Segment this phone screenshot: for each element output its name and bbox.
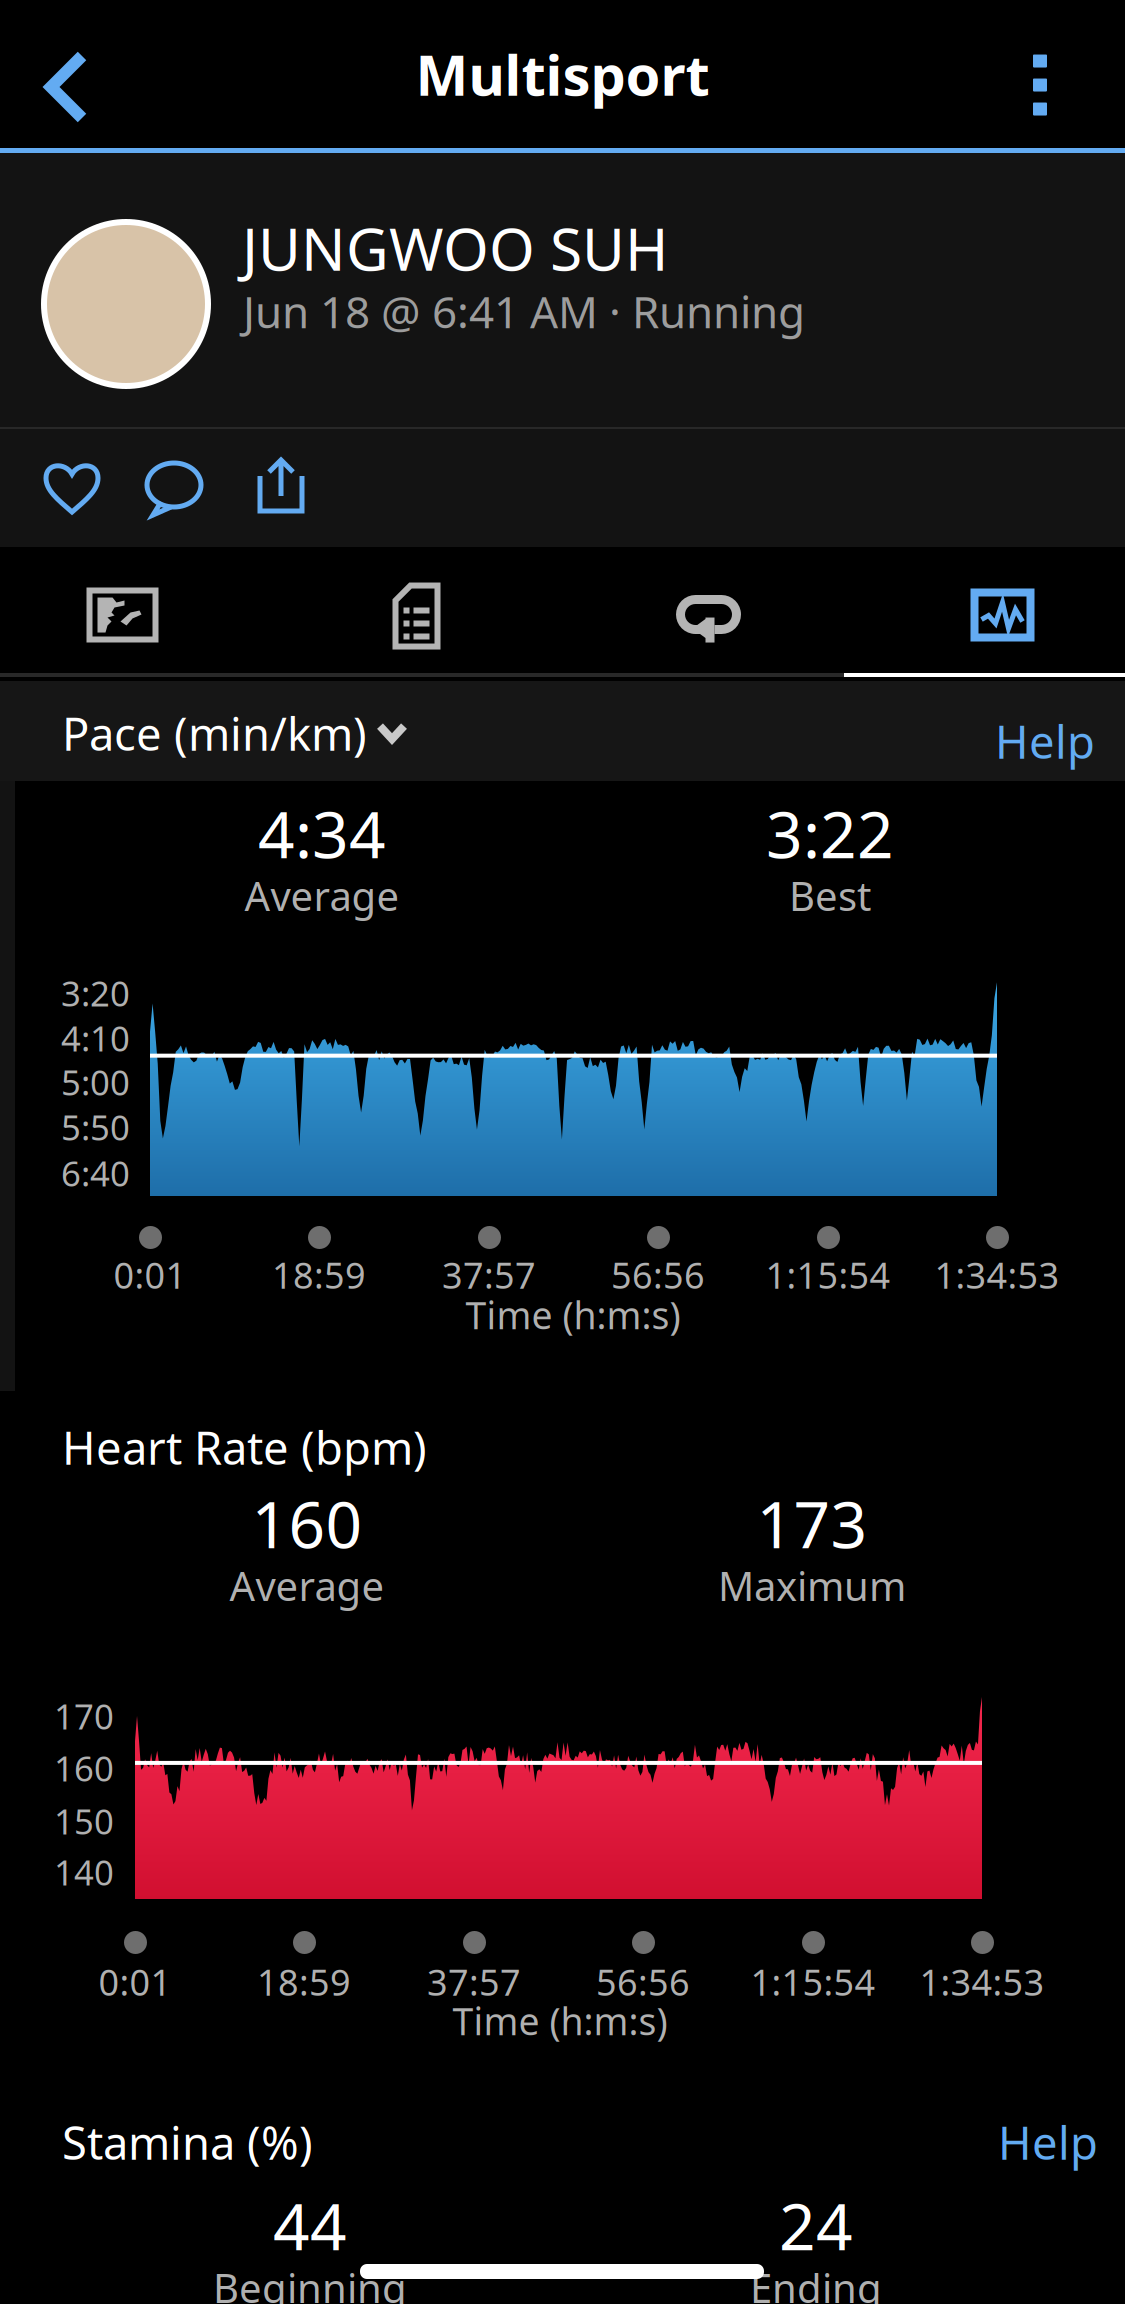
- staticText: Average: [229, 1559, 384, 1612]
- button[interactable]: Back: [2, 13, 132, 161]
- button[interactable]: Like: [18, 428, 126, 548]
- button[interactable]: Share: [227, 425, 335, 545]
- staticText: Ending: [750, 2261, 882, 2304]
- staticText: 160: [54, 1745, 114, 1791]
- staticText: Time (h:m:s): [452, 1996, 667, 2046]
- staticText: 160: [251, 1481, 362, 1566]
- button[interactable]: Map: [0, 552, 263, 678]
- staticText: 18:59: [272, 1251, 366, 1299]
- staticText: Pace (min/km): [62, 703, 367, 763]
- button[interactable]: Help: [898, 2096, 1098, 2188]
- button[interactable]: Charts: [862, 552, 1125, 678]
- staticText: 44: [273, 2183, 347, 2268]
- staticText: 1:15:54: [765, 1251, 890, 1299]
- staticText: Multisport: [415, 37, 709, 111]
- staticText: Stamina (%): [62, 2112, 313, 2172]
- staticText: 3:20: [61, 970, 130, 1016]
- staticText: 5:00: [61, 1059, 130, 1105]
- staticText: 170: [54, 1693, 114, 1739]
- staticText: 0:01: [113, 1251, 186, 1299]
- staticText: 6:40: [61, 1150, 130, 1196]
- staticText: Best: [789, 869, 871, 922]
- staticText: Jun 18 @ 6:41 AM · Running: [243, 282, 805, 340]
- staticText: Time (h:m:s): [465, 1290, 680, 1340]
- staticText: 3:22: [766, 791, 894, 876]
- button[interactable]: Comment: [120, 430, 228, 550]
- staticText: 0:01: [98, 1958, 171, 2006]
- staticText: 37:57: [427, 1958, 521, 2006]
- staticText: Average: [244, 869, 399, 922]
- staticText: Help: [995, 711, 1095, 771]
- staticText: 140: [54, 1849, 114, 1895]
- button[interactable]: Pace (min/km): [62, 681, 439, 785]
- button[interactable]: Laps: [568, 558, 849, 684]
- staticText: 18:59: [257, 1958, 351, 2006]
- staticText: 150: [54, 1798, 114, 1844]
- button[interactable]: Help: [895, 689, 1095, 793]
- staticText: 5:50: [61, 1104, 130, 1150]
- staticText: Heart Rate (bpm): [62, 1417, 427, 1477]
- staticText: Beginning: [213, 2261, 407, 2304]
- button[interactable]: Details: [276, 553, 557, 679]
- staticText: 1:34:53: [919, 1958, 1044, 2006]
- button[interactable]: More options: [975, 11, 1105, 159]
- staticText: JUNGWOO SUH: [242, 209, 668, 287]
- staticText: 56:56: [611, 1251, 705, 1299]
- staticText: 4:34: [258, 791, 386, 876]
- staticText: 24: [779, 2183, 853, 2268]
- staticText: 56:56: [596, 1958, 690, 2006]
- staticText: 4:10: [61, 1015, 130, 1061]
- staticText: 173: [756, 1481, 867, 1566]
- staticText: 37:57: [442, 1251, 536, 1299]
- staticText: Help: [998, 2112, 1098, 2172]
- staticText: Maximum: [718, 1559, 906, 1612]
- staticText: 1:15:54: [750, 1958, 875, 2006]
- staticText: 1:34:53: [934, 1251, 1059, 1299]
